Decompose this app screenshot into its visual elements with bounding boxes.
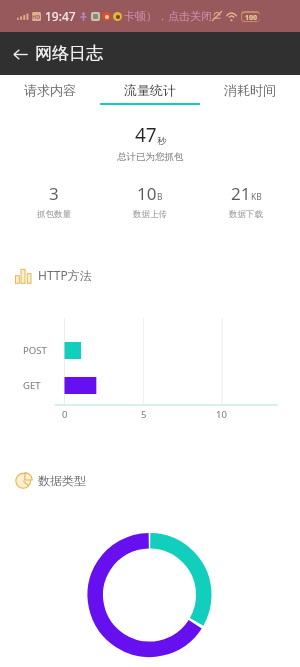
staticText: 100 xyxy=(245,13,258,21)
staticText: HTTP方法 xyxy=(38,267,92,283)
button[interactable]: 消耗时间 xyxy=(200,75,300,105)
button[interactable]: 请求内容 xyxy=(0,75,100,105)
staticText: 19:47 xyxy=(45,8,76,24)
staticText: 47 xyxy=(135,122,157,148)
staticText: 卡顿），点击关闭 xyxy=(124,9,212,23)
staticText: 总计已为您抓包 xyxy=(117,151,184,163)
staticText: B xyxy=(157,191,163,203)
staticText: 0 xyxy=(62,408,68,421)
staticText: 数据类型 xyxy=(38,473,86,488)
staticText: 秒 xyxy=(157,135,166,146)
staticText: 流量统计 xyxy=(124,82,176,98)
button[interactable]: 流量统计 xyxy=(100,75,200,105)
staticText: POST xyxy=(23,344,47,357)
staticText: 抓包数量 xyxy=(37,209,71,220)
staticText: 网络日志 xyxy=(35,43,103,64)
staticText: 数据下载 xyxy=(229,209,263,220)
staticText: 10 xyxy=(137,182,157,205)
staticText: 3 xyxy=(49,182,59,205)
staticText: 数据上传 xyxy=(133,209,167,220)
staticText: 5 xyxy=(141,408,147,421)
staticText: KB xyxy=(251,191,262,203)
staticText: 消耗时间 xyxy=(224,82,276,98)
staticText: 10 xyxy=(216,408,227,421)
staticText: GET xyxy=(23,379,41,392)
staticText: HD xyxy=(32,13,41,20)
staticText: 请求内容 xyxy=(24,82,76,98)
button[interactable]: Back xyxy=(8,42,32,66)
staticText: 21 xyxy=(231,182,251,205)
